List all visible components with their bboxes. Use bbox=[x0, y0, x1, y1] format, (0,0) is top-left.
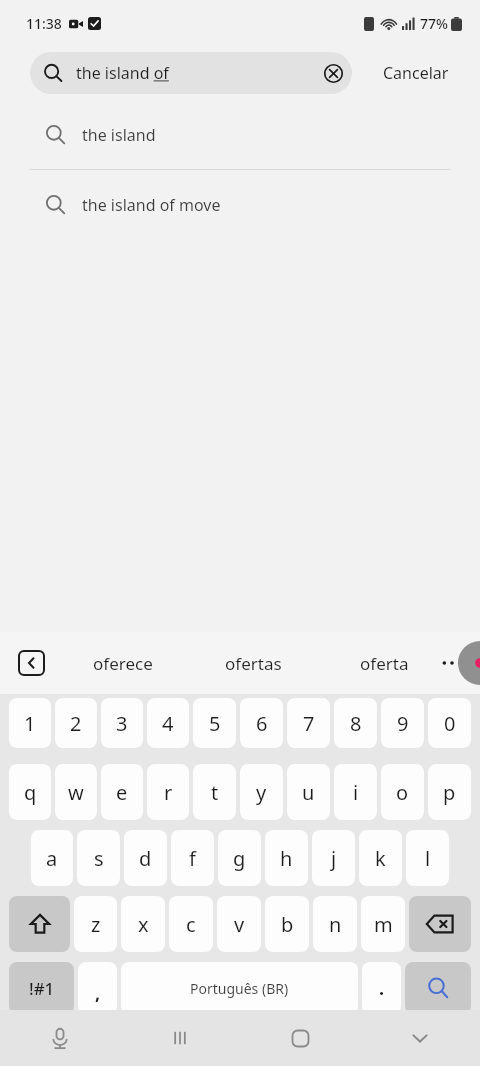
button[interactable]: oferece bbox=[58, 638, 188, 688]
staticText: o bbox=[396, 779, 409, 806]
button[interactable]: Cancelar bbox=[352, 46, 480, 100]
staticText: 3 bbox=[116, 710, 128, 737]
button[interactable]: !#1 bbox=[9, 962, 74, 1014]
button[interactable]: the island of move bbox=[0, 170, 480, 239]
button[interactable]: v bbox=[217, 896, 261, 952]
button[interactable]: o bbox=[381, 764, 424, 820]
button[interactable]: 1 bbox=[9, 698, 51, 748]
button[interactable]: 6 bbox=[240, 698, 283, 748]
button[interactable]: c bbox=[169, 896, 213, 952]
staticText: s bbox=[94, 845, 104, 872]
staticText: the island bbox=[82, 124, 156, 146]
button[interactable]: z bbox=[74, 896, 117, 952]
button[interactable]: s bbox=[77, 830, 120, 886]
staticText: m bbox=[374, 911, 393, 938]
button[interactable]: e bbox=[101, 764, 143, 820]
button[interactable]: i bbox=[334, 764, 377, 820]
button[interactable]: Voice input bbox=[0, 1010, 120, 1066]
staticText: p bbox=[443, 779, 456, 806]
button[interactable]: k bbox=[359, 830, 402, 886]
button[interactable]: t bbox=[193, 764, 236, 820]
staticText: 4 bbox=[162, 710, 174, 737]
button[interactable]: ofertas bbox=[188, 638, 319, 688]
staticText: n bbox=[329, 911, 342, 938]
staticText: g bbox=[233, 845, 246, 872]
staticText: !#1 bbox=[29, 977, 55, 1000]
staticText: a bbox=[46, 845, 58, 872]
button[interactable]: x bbox=[121, 896, 165, 952]
button[interactable]: p bbox=[428, 764, 471, 820]
button[interactable]: 8 bbox=[334, 698, 377, 748]
button[interactable]: oferta bbox=[319, 638, 450, 688]
staticText: h bbox=[280, 845, 293, 872]
button[interactable]: Home bbox=[240, 1010, 360, 1066]
staticText: . bbox=[379, 976, 385, 1001]
button[interactable]: More bbox=[432, 643, 472, 683]
staticText: i bbox=[353, 779, 359, 806]
staticText: 11:38 bbox=[26, 14, 62, 33]
button[interactable]: m bbox=[361, 896, 405, 952]
button[interactable]: Hide keyboard bbox=[360, 1010, 480, 1066]
button[interactable]: the island bbox=[0, 100, 480, 169]
button[interactable]: 7 bbox=[287, 698, 330, 748]
staticText: t bbox=[211, 779, 219, 806]
button[interactable]: Search bbox=[30, 52, 352, 94]
button[interactable]: r bbox=[147, 764, 189, 820]
button[interactable]: w bbox=[55, 764, 97, 820]
button[interactable]: 2 bbox=[55, 698, 97, 748]
button[interactable]: Backspace bbox=[409, 896, 471, 952]
button[interactable]: g bbox=[218, 830, 261, 886]
other: Search bbox=[43, 63, 63, 83]
button[interactable]: b bbox=[265, 896, 309, 952]
button[interactable]: 9 bbox=[381, 698, 424, 748]
button[interactable]: 4 bbox=[147, 698, 189, 748]
staticText: f bbox=[189, 845, 196, 872]
button[interactable]: Português (BR) bbox=[121, 962, 358, 1014]
staticText: j bbox=[331, 845, 337, 872]
staticText: d bbox=[139, 845, 152, 872]
button[interactable]: d bbox=[124, 830, 167, 886]
button[interactable]: a bbox=[31, 830, 73, 886]
staticText: z bbox=[91, 911, 101, 938]
button[interactable]: h bbox=[265, 830, 308, 886]
staticText: , bbox=[95, 981, 101, 1006]
staticText: q bbox=[24, 779, 37, 806]
staticText: ofertas bbox=[225, 652, 282, 675]
staticText: u bbox=[302, 779, 315, 806]
button[interactable]: 5 bbox=[193, 698, 236, 748]
staticText: b bbox=[281, 911, 294, 938]
staticText: w bbox=[68, 779, 84, 806]
button[interactable]: f bbox=[171, 830, 214, 886]
staticText: the island of move bbox=[82, 194, 221, 216]
button[interactable]: j bbox=[312, 830, 355, 886]
staticText: 8 bbox=[350, 710, 362, 737]
button[interactable]: Clear bbox=[314, 54, 352, 92]
button[interactable]: 3 bbox=[101, 698, 143, 748]
staticText: x bbox=[138, 911, 149, 938]
button[interactable]: l bbox=[406, 830, 449, 886]
button[interactable]: n bbox=[313, 896, 357, 952]
staticText: oferece bbox=[93, 652, 153, 675]
button[interactable]: . bbox=[362, 962, 401, 1014]
button[interactable]: y bbox=[240, 764, 283, 820]
staticText: oferta bbox=[360, 652, 409, 675]
staticText: l bbox=[425, 845, 431, 872]
button[interactable]: q bbox=[9, 764, 51, 820]
staticText: the island of bbox=[76, 62, 314, 84]
staticText: 0 bbox=[444, 710, 456, 737]
staticText: Português (BR) bbox=[190, 979, 289, 998]
button[interactable]: Search bbox=[405, 962, 471, 1014]
staticText: 5 bbox=[209, 710, 221, 737]
staticText: c bbox=[186, 911, 196, 938]
staticText: v bbox=[234, 911, 245, 938]
staticText: r bbox=[164, 779, 173, 806]
staticText: Cancelar bbox=[383, 62, 449, 84]
button[interactable]: Previous bbox=[10, 642, 52, 684]
staticText: 2 bbox=[70, 710, 82, 737]
button[interactable]: , bbox=[78, 962, 117, 1014]
button[interactable]: 0 bbox=[428, 698, 471, 748]
button[interactable]: Shift bbox=[9, 896, 70, 952]
button[interactable]: u bbox=[287, 764, 330, 820]
staticText: y bbox=[256, 779, 267, 806]
button[interactable]: Recents bbox=[120, 1010, 240, 1066]
